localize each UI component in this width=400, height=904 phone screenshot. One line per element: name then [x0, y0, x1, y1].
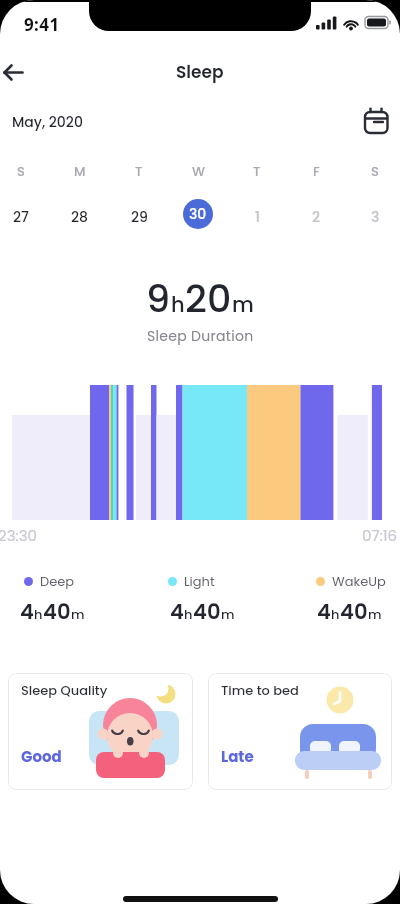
staticText: 4: [317, 597, 331, 626]
staticText: h: [184, 605, 193, 623]
button[interactable]: 29: [124, 202, 154, 232]
staticText: 4: [20, 597, 34, 626]
staticText: m: [368, 605, 382, 623]
staticText: h: [34, 605, 43, 623]
staticText: 27: [13, 207, 29, 227]
button[interactable]: Sleep Quality: [8, 673, 193, 790]
staticText: May, 2020: [12, 112, 83, 132]
staticText: S: [371, 162, 379, 180]
staticText: Late: [221, 746, 254, 767]
staticText: S: [17, 162, 25, 180]
button[interactable]: [362, 105, 390, 135]
staticText: 40: [340, 597, 368, 626]
button[interactable]: Time to bed: [208, 673, 392, 790]
button[interactable]: 3: [360, 202, 390, 232]
staticText: 1: [255, 207, 260, 227]
staticText: Light: [184, 572, 215, 590]
staticText: 4: [170, 597, 184, 626]
staticText: F: [313, 162, 320, 180]
staticText: 20: [185, 272, 232, 325]
staticText: m: [71, 605, 85, 623]
staticText: h: [331, 605, 340, 623]
staticText: m: [221, 605, 235, 623]
button[interactable]: WakeUp: [316, 572, 386, 590]
button[interactable]: 2: [301, 202, 331, 232]
button[interactable]: 28: [65, 202, 95, 232]
button[interactable]: 30: [183, 199, 213, 229]
staticText: 29: [131, 207, 148, 227]
staticText: Time to bed: [221, 681, 299, 699]
staticText: 40: [193, 597, 221, 626]
staticText: WakeUp: [332, 572, 386, 590]
staticText: Sleep: [176, 60, 224, 84]
button[interactable]: 27: [6, 202, 36, 232]
staticText: h: [171, 290, 185, 319]
staticText: 2: [312, 207, 321, 227]
button[interactable]: [2, 62, 30, 84]
staticText: 9: [146, 272, 171, 325]
staticText: m: [232, 290, 254, 319]
staticText: 23:30: [0, 525, 37, 546]
button[interactable]: Deep: [24, 572, 75, 590]
staticText: 30: [189, 204, 207, 224]
staticText: Sleep Quality: [21, 681, 108, 699]
staticText: Good: [21, 746, 62, 767]
staticText: T: [135, 162, 143, 180]
button[interactable]: 1: [242, 202, 272, 232]
button[interactable]: Light: [168, 572, 215, 590]
staticText: W: [192, 162, 205, 180]
staticText: 9:41: [24, 13, 60, 36]
staticText: 28: [71, 207, 89, 227]
staticText: 40: [43, 597, 71, 626]
staticText: 3: [371, 207, 380, 227]
staticText: T: [253, 162, 261, 180]
staticText: 07:16: [362, 525, 398, 546]
staticText: Sleep Duration: [147, 326, 254, 346]
staticText: M: [74, 162, 86, 180]
staticText: Deep: [40, 572, 75, 590]
